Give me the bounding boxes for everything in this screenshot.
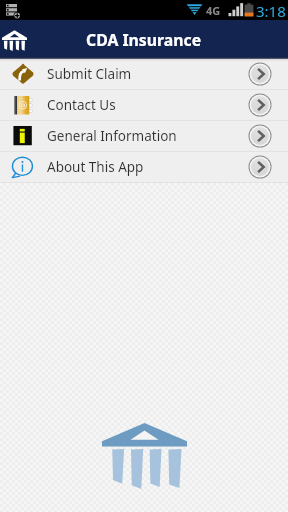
button[interactable]: CDA Insurance [0,20,288,57]
button[interactable]: Submit Claim [0,59,288,89]
staticText: General Information [47,127,177,145]
button[interactable]: Contact Us [0,90,288,120]
staticText: 4G [206,3,221,18]
button[interactable]: About This App [0,152,288,182]
staticText: Contact Us [47,96,116,114]
staticText: 3:18 [256,1,286,21]
button[interactable]: General Information [0,121,288,151]
staticText: CDA Insurance [86,29,202,51]
other: CDA Insurance [2,26,27,51]
staticText: About This App [47,158,144,176]
staticText: Submit Claim [47,65,132,83]
